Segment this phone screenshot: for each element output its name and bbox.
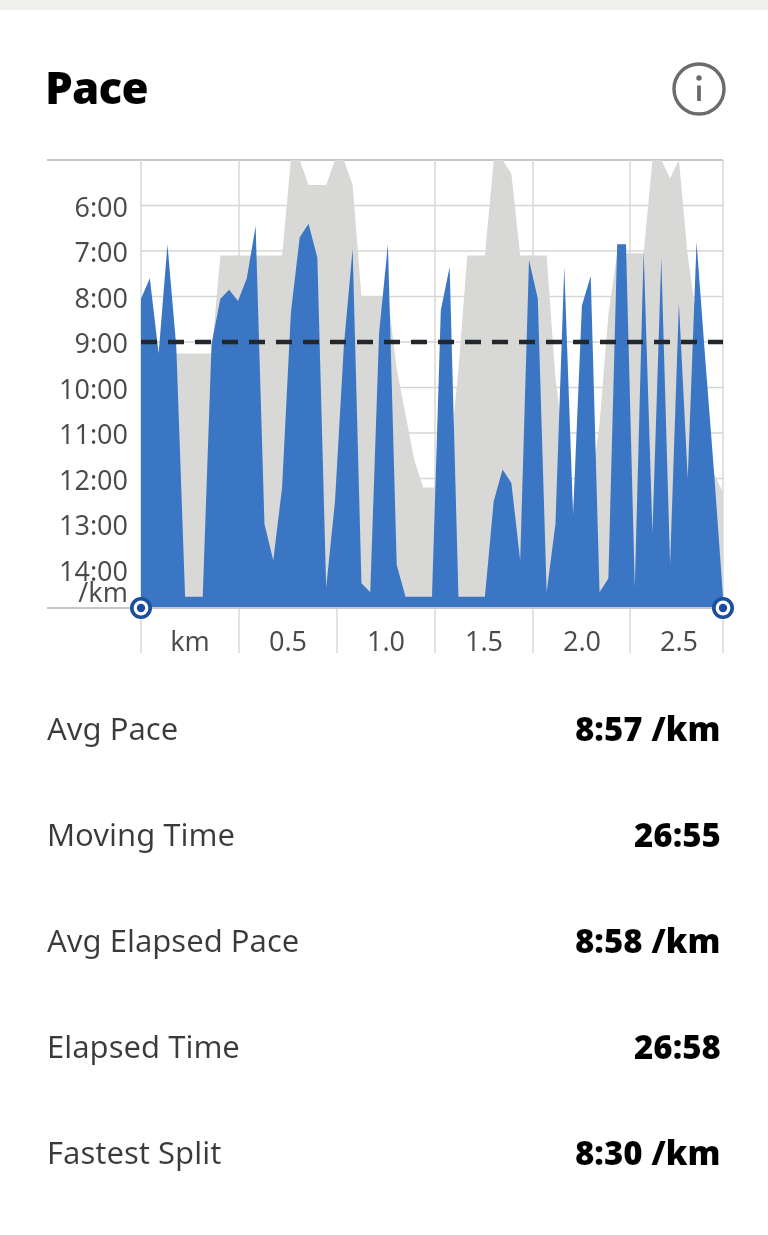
staticText: Pace (45, 57, 148, 117)
staticText: Fastest Split (47, 1131, 222, 1173)
staticText: 26:58 (634, 1024, 721, 1069)
staticText: 1.5 (435, 622, 533, 659)
staticText: Avg Pace (47, 707, 179, 749)
button[interactable]: Avg Pace (0, 675, 768, 781)
staticText: 10:00 (0, 370, 128, 407)
staticText: 8:58 /km (575, 918, 721, 963)
staticText: Avg Elapsed Pace (47, 919, 300, 961)
staticText: 26:55 (634, 812, 721, 857)
staticText: 14:00 (0, 552, 128, 589)
staticText: 6:00 (0, 188, 128, 225)
button[interactable]: Elapsed Time (0, 993, 768, 1099)
staticText: 11:00 (0, 415, 128, 452)
staticText: 7:00 (0, 233, 128, 270)
staticText: 8:57 /km (575, 706, 721, 751)
button[interactable]: Information about Pace (669, 59, 729, 119)
staticText: 2.0 (533, 622, 631, 659)
staticText: 8:00 (0, 279, 128, 316)
staticText: 9:00 (0, 324, 128, 361)
staticText: Moving Time (47, 813, 235, 855)
staticText: 1.0 (337, 622, 435, 659)
staticText: 8:30 /km (575, 1130, 721, 1175)
staticText: 2.5 (630, 622, 728, 659)
staticText: Elapsed Time (47, 1025, 240, 1067)
staticText: 13:00 (0, 506, 128, 543)
staticText: 0.5 (239, 622, 337, 659)
button[interactable]: Fastest Split (0, 1099, 768, 1205)
staticText: /km (0, 573, 128, 610)
button[interactable]: Moving Time (0, 781, 768, 887)
staticText: km (141, 622, 239, 659)
staticText: 12:00 (0, 461, 128, 498)
button[interactable]: Avg Elapsed Pace (0, 887, 768, 993)
